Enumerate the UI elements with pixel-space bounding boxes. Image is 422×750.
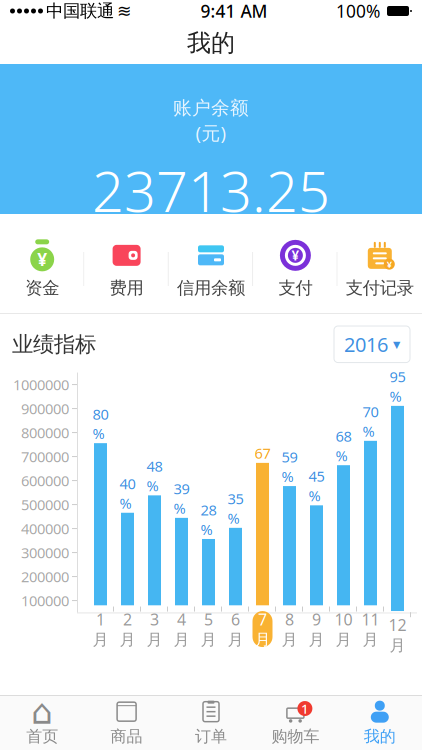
staticText: 70 % (362, 402, 378, 441)
staticText: 9 (312, 609, 321, 630)
staticText: 购物车 (271, 727, 319, 746)
staticText: 48% (146, 456, 162, 495)
staticText: 10 (334, 609, 352, 630)
staticText: 900000 (21, 399, 69, 418)
staticText: 1000000 (13, 375, 69, 394)
staticText: 68% (335, 426, 351, 465)
button[interactable]: ¥ (0, 224, 84, 314)
staticText: 500000 (21, 495, 69, 514)
staticText: 中国联通 (46, 0, 114, 22)
button[interactable]: 2016 (334, 326, 410, 363)
staticText: 首页 (26, 727, 58, 746)
staticText: 23713.25 (92, 153, 330, 228)
staticText: 59% (281, 447, 297, 486)
button[interactable]: 商品 (84, 696, 169, 750)
staticText: 月 (200, 630, 216, 650)
staticText: 67 (254, 443, 270, 463)
staticText: 月 (227, 630, 243, 650)
staticText: 月 (119, 630, 135, 650)
button[interactable]: 信用余额 (169, 224, 253, 314)
button[interactable]: ¥ (253, 224, 338, 314)
button[interactable]: 我的 (338, 696, 422, 750)
staticText: 400000 (21, 519, 69, 538)
staticText: ▾ (393, 336, 400, 353)
staticText: 28% (200, 500, 216, 539)
staticText: 月 (146, 630, 162, 650)
staticText: 我的 (364, 727, 396, 746)
staticText: ¥ (37, 248, 47, 271)
staticText: 月 (308, 630, 324, 650)
staticText: 账户余额 (173, 96, 249, 119)
staticText: 月 (335, 630, 351, 650)
staticText: 800000 (21, 423, 69, 442)
button[interactable]: 订单 (169, 696, 253, 750)
staticText: ⌂ (31, 692, 53, 731)
staticText: 业绩指标 (12, 331, 96, 357)
staticText: 4 (177, 609, 186, 630)
staticText: ¥ (387, 258, 392, 270)
staticText: 1 (301, 700, 309, 717)
staticText: 2 (123, 609, 132, 630)
staticText: ≋ (117, 1, 132, 21)
staticText: 600000 (21, 471, 69, 490)
staticText: 月 (173, 630, 189, 650)
staticText: 3 (150, 609, 159, 630)
staticText: 200000 (21, 567, 69, 586)
staticText: 商品 (111, 727, 143, 746)
staticText: 35% (227, 489, 243, 528)
staticText: 月 (281, 630, 297, 650)
staticText: 月 (92, 630, 108, 650)
staticText: 80% (92, 404, 108, 443)
button[interactable]: ¥ (338, 224, 422, 314)
staticText: 45% (308, 466, 324, 505)
staticText: 8 (285, 609, 294, 630)
staticText: 39% (173, 479, 189, 518)
staticText: 7 (258, 609, 267, 630)
staticText: (元) (195, 120, 226, 145)
staticText: 订单 (195, 727, 227, 746)
staticText: 9:41 AM (200, 0, 267, 22)
staticText: 1 (96, 609, 105, 630)
staticText: 费用 (110, 277, 144, 299)
staticText: 支付记录 (346, 277, 414, 299)
staticText: 资金 (25, 277, 59, 299)
staticText: 100% (336, 0, 380, 22)
staticText: 月 (389, 635, 405, 655)
staticText: 支付 (278, 277, 312, 299)
staticText: 95% (389, 367, 405, 406)
button[interactable]: ⌂ (0, 696, 84, 750)
staticText: 100000 (21, 591, 69, 610)
staticText: 信用余额 (177, 277, 245, 299)
staticText: 300000 (21, 543, 69, 562)
staticText: 月 (362, 630, 378, 650)
button[interactable]: 费用 (84, 224, 169, 314)
staticText: 700000 (21, 447, 69, 466)
staticText: 2016 (344, 331, 388, 358)
staticText: 月 (254, 630, 270, 650)
staticText: 12 (388, 614, 406, 635)
staticText: ¥ (291, 246, 299, 264)
staticText: 我的 (187, 28, 235, 58)
staticText: 6 (231, 609, 240, 630)
staticText: 40% (119, 474, 135, 513)
staticText: 11 (361, 609, 379, 630)
button[interactable]: 1 (253, 696, 338, 750)
staticText: 5 (204, 609, 213, 630)
